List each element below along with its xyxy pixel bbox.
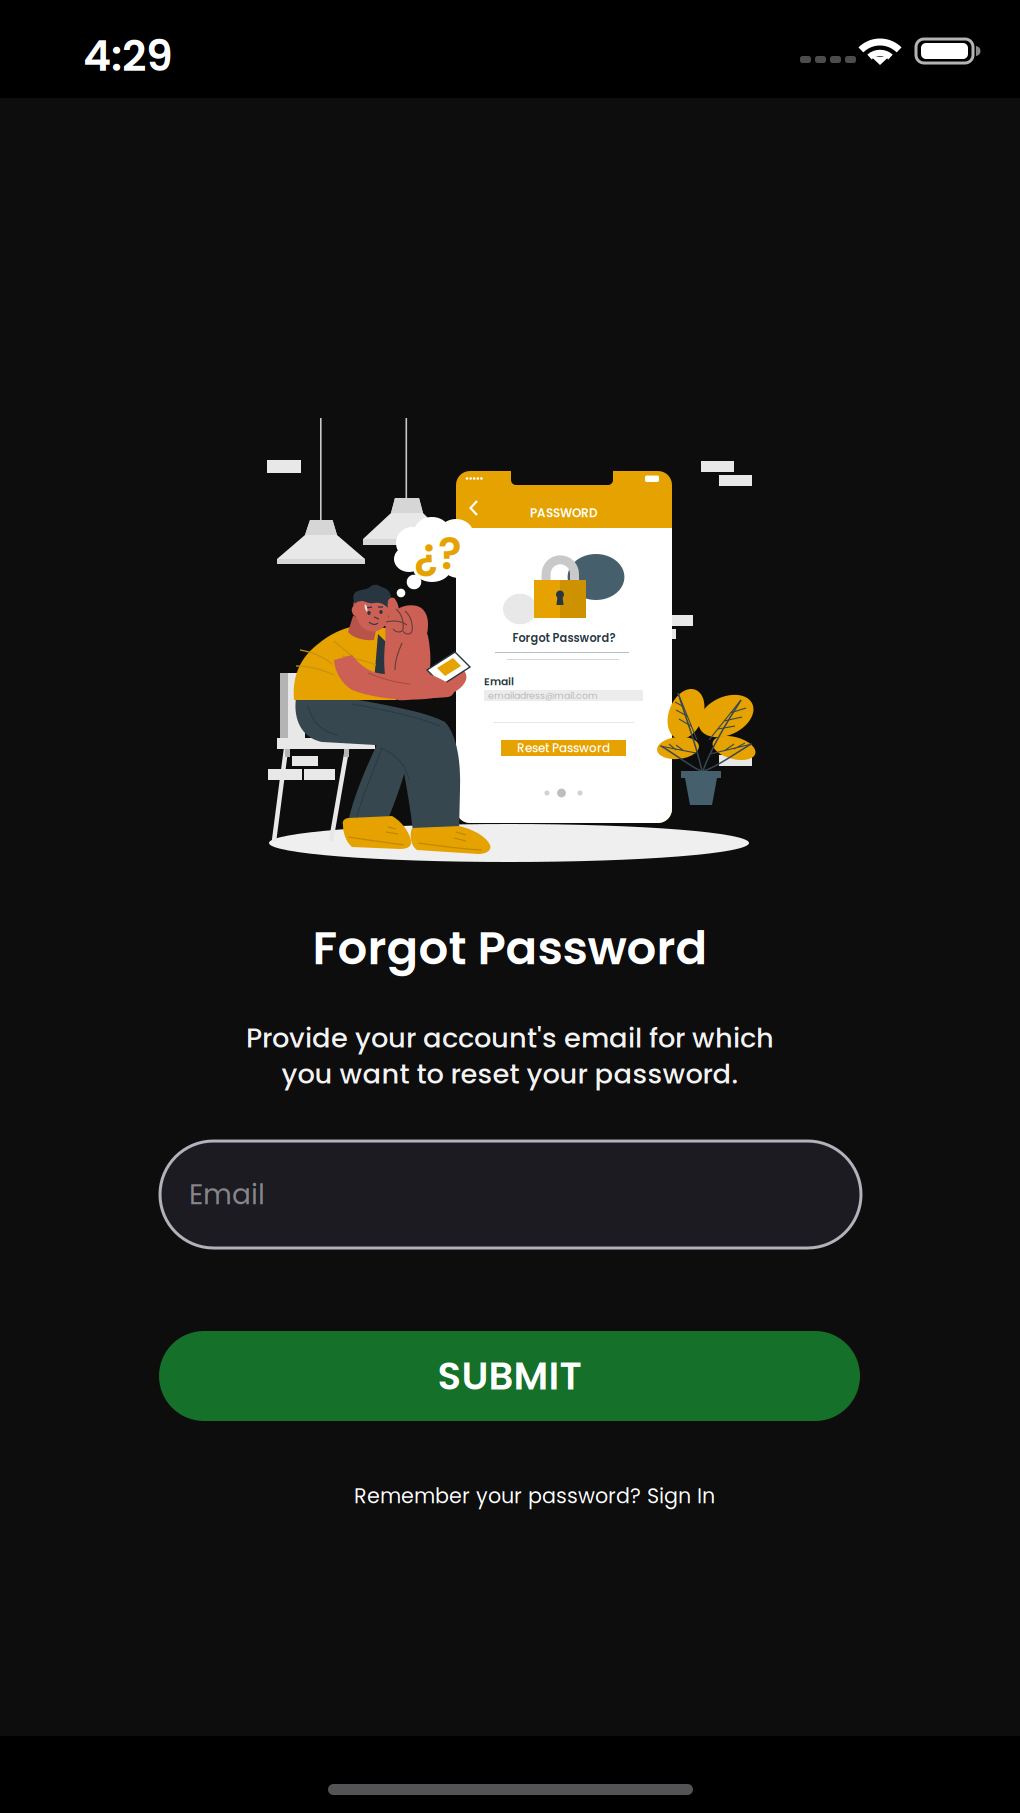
staticText: Provide your account's email for which xyxy=(246,1019,774,1057)
staticText: emailadress@mail.com xyxy=(488,689,598,702)
button[interactable]: SUBMIT xyxy=(159,1331,860,1421)
staticText: SUBMIT xyxy=(437,1349,581,1403)
staticText: Remember your password? xyxy=(354,1481,647,1510)
button[interactable]: Email xyxy=(160,1141,861,1248)
staticText: 4:29 xyxy=(83,26,173,86)
staticText: Reset Password xyxy=(517,740,610,756)
staticText: Forgot Password xyxy=(312,915,707,981)
staticText: Email xyxy=(189,1175,265,1214)
staticText: Sign In xyxy=(647,1481,715,1510)
button[interactable]: Sign In xyxy=(647,1481,715,1510)
staticText: Forgot Password? xyxy=(512,630,615,646)
staticText: Email xyxy=(484,674,514,689)
staticText: ¿? xyxy=(414,523,462,585)
staticText: you want to reset your password. xyxy=(281,1055,738,1093)
staticText: PASSWORD xyxy=(530,505,598,521)
